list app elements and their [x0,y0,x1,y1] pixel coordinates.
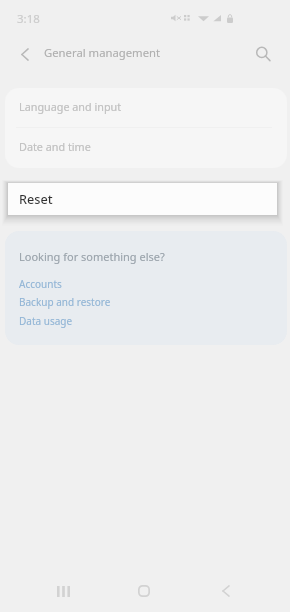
staticText: Language and input [19,99,122,114]
button[interactable]: Navigate up [11,36,39,72]
button[interactable]: Backup and restore [19,295,111,309]
button[interactable]: Date and time [5,128,287,168]
button[interactable]: Data usage [19,314,73,328]
staticText: Accounts [19,277,62,291]
staticText: Looking for something else? [19,249,165,264]
staticText: 3:18 [17,11,40,27]
staticText: Backup and restore [19,295,111,309]
staticText: General management [44,45,161,60]
button[interactable]: Home [123,570,165,612]
button[interactable]: Accounts [19,277,62,291]
staticText: Data usage [19,314,73,328]
button[interactable]: Search [248,36,278,72]
button[interactable]: Language and input [5,88,287,128]
button[interactable]: Recent apps [42,570,84,612]
staticText: Date and time [19,139,91,154]
staticText: Reset [19,190,53,207]
button[interactable]: Back [205,570,247,612]
